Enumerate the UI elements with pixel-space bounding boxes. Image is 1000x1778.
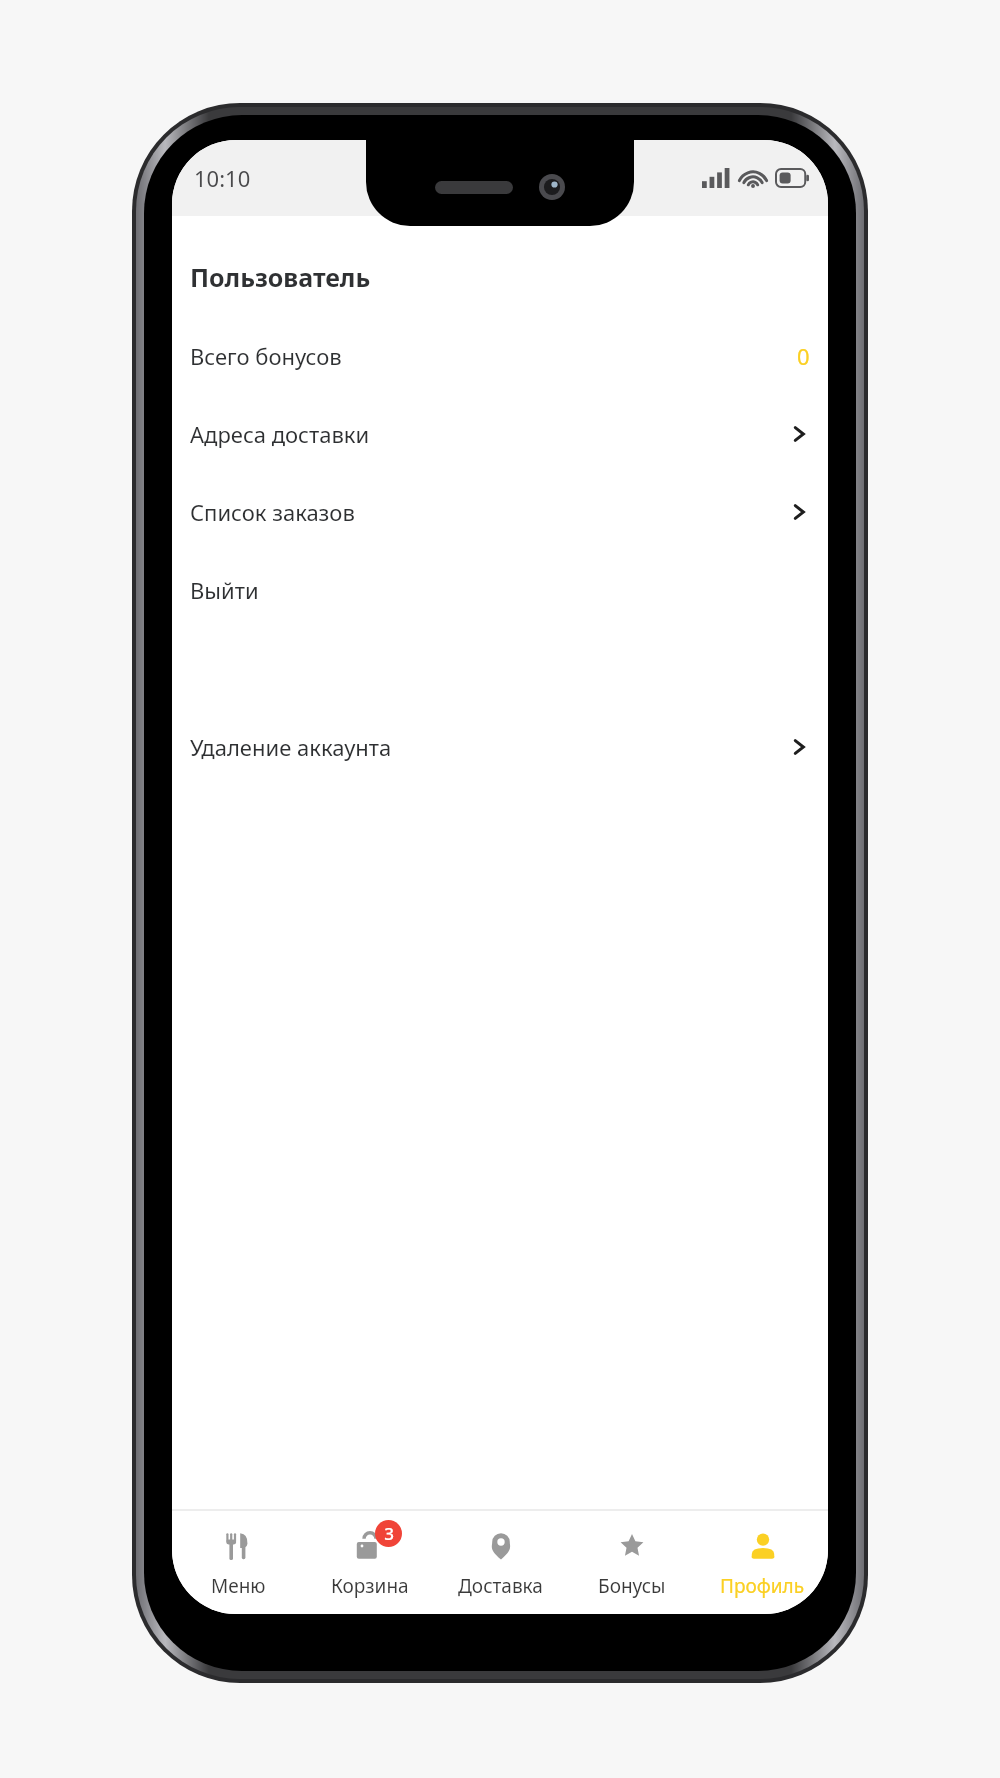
- staticText: Корзина: [331, 1573, 409, 1599]
- staticText: Выйти: [190, 575, 259, 605]
- staticText: Адреса доставки: [190, 419, 370, 449]
- staticText: Меню: [211, 1573, 266, 1599]
- staticText: Профиль: [720, 1573, 805, 1599]
- staticText: 10:10: [194, 163, 251, 193]
- button[interactable]: Выйти: [172, 573, 828, 607]
- button[interactable]: Бонусы: [566, 1511, 697, 1614]
- button[interactable]: Удаление аккаунта: [172, 730, 828, 764]
- button[interactable]: Адреса доставки: [172, 417, 828, 451]
- button[interactable]: Корзина: [304, 1511, 435, 1614]
- button[interactable]: Доставка: [435, 1511, 566, 1614]
- button[interactable]: Список заказов: [172, 495, 828, 529]
- staticText: 3: [384, 1522, 394, 1545]
- button[interactable]: Всего бонусов: [172, 339, 828, 373]
- staticText: Доставка: [458, 1573, 543, 1599]
- button[interactable]: Меню: [172, 1511, 304, 1614]
- staticText: Удаление аккаунта: [190, 732, 392, 762]
- staticText: 0: [797, 341, 810, 371]
- staticText: Бонусы: [598, 1573, 666, 1599]
- button[interactable]: Профиль: [697, 1511, 828, 1614]
- staticText: Пользователь: [190, 260, 371, 294]
- staticText: Всего бонусов: [190, 341, 342, 371]
- staticText: Список заказов: [190, 497, 355, 527]
